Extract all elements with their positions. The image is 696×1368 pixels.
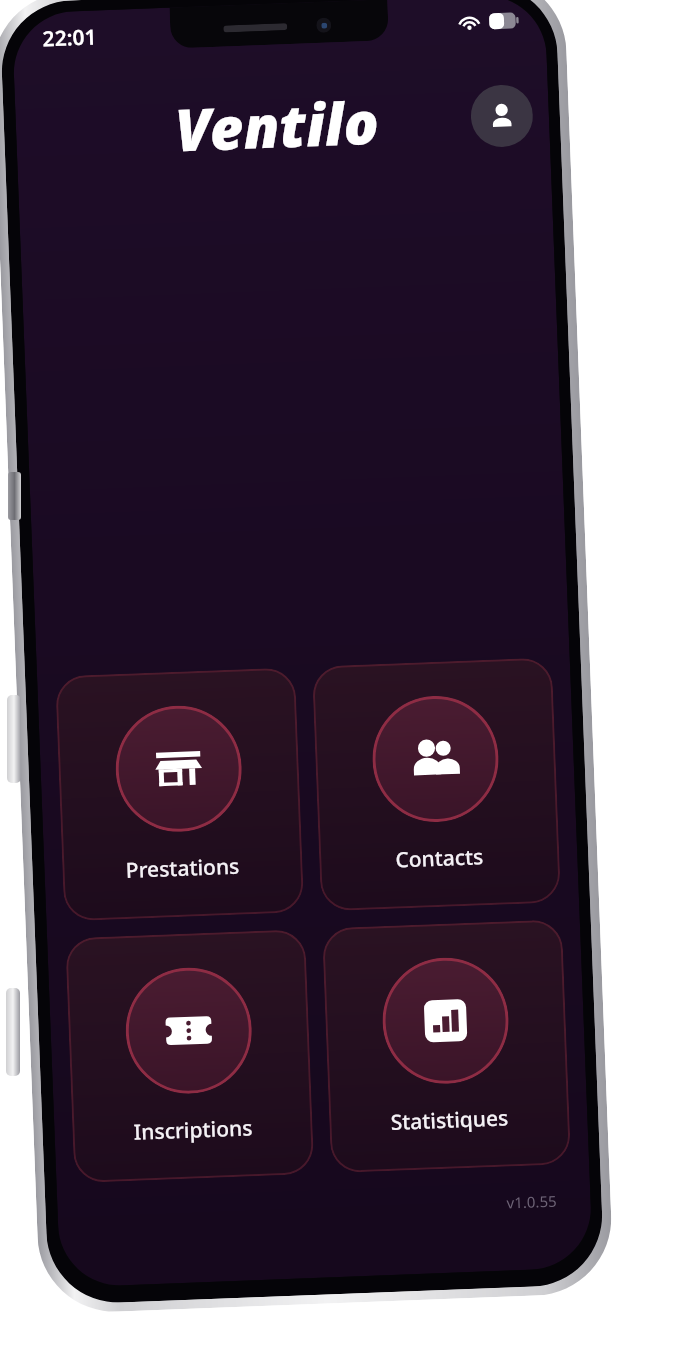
staticText: Prestations: [125, 852, 240, 885]
button[interactable]: Profil: [470, 84, 534, 148]
staticText: Ventilo: [174, 82, 380, 168]
staticText: 22:01: [42, 22, 97, 54]
staticText: Statistiques: [390, 1103, 509, 1137]
staticText: v1.0.55: [57, 1191, 557, 1230]
button[interactable]: Prestations: [55, 667, 304, 921]
button[interactable]: Contacts: [312, 657, 561, 911]
staticText: Inscriptions: [133, 1113, 253, 1147]
button[interactable]: Inscriptions: [65, 929, 314, 1183]
staticText: Contacts: [395, 842, 484, 875]
button[interactable]: Statistiques: [322, 919, 571, 1173]
